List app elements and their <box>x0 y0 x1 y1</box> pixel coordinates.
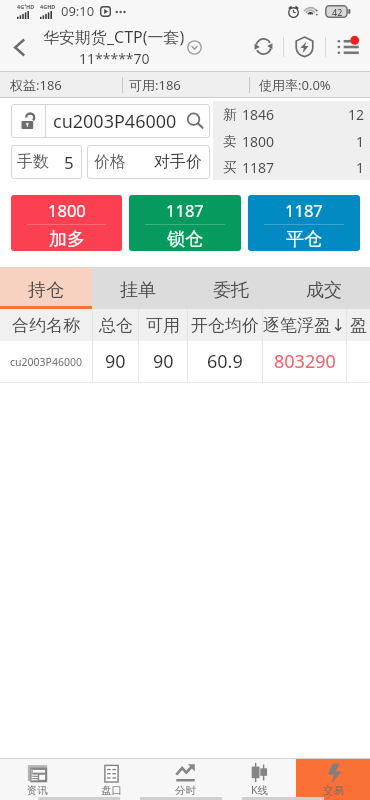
staticText: 新 <box>223 106 237 123</box>
button[interactable]: 交易 <box>296 759 370 800</box>
button[interactable]: 委托 <box>184 267 277 309</box>
staticText: 开仓均价 <box>191 315 259 336</box>
button[interactable]: 使用率:0.0% <box>250 72 370 97</box>
button[interactable]: 资讯 <box>0 759 74 800</box>
staticText: 总仓 <box>99 315 133 336</box>
staticText: 分时 <box>175 784 196 797</box>
staticText: 1800 <box>48 199 86 221</box>
staticText: 1 <box>356 158 365 177</box>
button[interactable]: 成交 <box>277 267 370 309</box>
staticText: 持仓 <box>28 279 64 302</box>
staticText: 华安期货_CTP(一套) <box>43 26 185 48</box>
button[interactable]: 开仓均价 <box>188 309 262 341</box>
staticText: 盈 <box>350 315 367 336</box>
staticText: 委托 <box>213 279 249 302</box>
button[interactable]: 1187 <box>129 195 241 251</box>
staticText: 11*****70 <box>79 49 150 68</box>
staticText: 逐笔浮盈↓ <box>263 315 346 336</box>
staticText: 锁仓 <box>167 228 203 251</box>
button[interactable]: 可用:186 <box>123 72 249 97</box>
staticText: 可用:186 <box>129 76 181 94</box>
button[interactable]: 盘口 <box>74 759 148 800</box>
staticText: 4G⁺HD <box>17 3 35 10</box>
staticText: 卖 <box>223 133 237 150</box>
button[interactable]: Back <box>0 28 38 66</box>
button[interactable]: Lock <box>11 104 45 138</box>
button[interactable]: 新 <box>213 101 370 180</box>
staticText: 1 <box>356 132 365 151</box>
staticText: 权益:186 <box>10 76 62 94</box>
staticText: 60.9 <box>207 349 243 374</box>
button[interactable]: Menu <box>326 22 370 71</box>
staticText: 资讯 <box>27 784 48 797</box>
button[interactable]: 1187 <box>248 195 360 251</box>
staticText: K线 <box>251 783 268 797</box>
staticText: 可用 <box>146 315 180 336</box>
staticText: cu2003P46000 <box>53 109 177 134</box>
staticText: 买 <box>223 159 237 176</box>
staticText: 1846 <box>242 105 275 124</box>
button[interactable]: K线 <box>222 759 296 800</box>
staticText: 盘口 <box>101 784 122 797</box>
button[interactable]: 盈 <box>347 309 370 341</box>
staticText: 手数 <box>17 152 49 172</box>
staticText: 1187 <box>285 199 323 221</box>
staticText: 加多 <box>49 228 85 251</box>
button[interactable]: 挂单 <box>92 267 184 309</box>
staticText: 交易 <box>323 784 344 797</box>
button[interactable]: 华安期货_CTP(一套) <box>43 26 202 68</box>
staticText: 803290 <box>274 349 336 374</box>
staticText: 09:10 <box>61 2 95 20</box>
staticText: 12 <box>348 105 365 124</box>
button[interactable]: 权益:186 <box>0 72 122 97</box>
staticText: 90 <box>153 349 174 374</box>
staticText: 1187 <box>242 158 275 177</box>
button[interactable]: cu2003P46000 <box>0 341 370 383</box>
staticText: 90 <box>105 349 126 374</box>
staticText: 成交 <box>306 279 342 302</box>
button[interactable]: 总仓 <box>93 309 138 341</box>
button[interactable]: 合约名称 <box>0 309 92 341</box>
staticText: 挂单 <box>120 279 156 302</box>
button[interactable]: Security <box>284 22 325 71</box>
staticText: 1187 <box>166 199 204 221</box>
button[interactable]: 价格 <box>87 145 210 179</box>
button[interactable]: 1800 <box>11 195 122 251</box>
staticText: 合约名称 <box>12 315 80 336</box>
button[interactable]: 逐笔浮盈↓ <box>263 309 346 341</box>
staticText: 价格 <box>94 152 126 172</box>
staticText: 平仓 <box>286 228 322 251</box>
staticText: 1800 <box>242 132 275 151</box>
staticText: cu2003P46000 <box>10 355 82 369</box>
staticText: 42 <box>332 6 343 18</box>
staticText: 5 <box>64 151 74 174</box>
staticText: 4GHD <box>40 3 56 10</box>
button[interactable]: 可用 <box>139 309 187 341</box>
button[interactable]: 分时 <box>148 759 222 800</box>
button[interactable]: 手数 <box>11 145 82 179</box>
staticText: 使用率:0.0% <box>259 76 331 94</box>
button[interactable]: Refresh <box>243 22 283 71</box>
button[interactable]: cu2003P46000 <box>46 104 210 138</box>
staticText: 对手价 <box>154 152 202 172</box>
button[interactable]: 持仓 <box>0 267 92 309</box>
